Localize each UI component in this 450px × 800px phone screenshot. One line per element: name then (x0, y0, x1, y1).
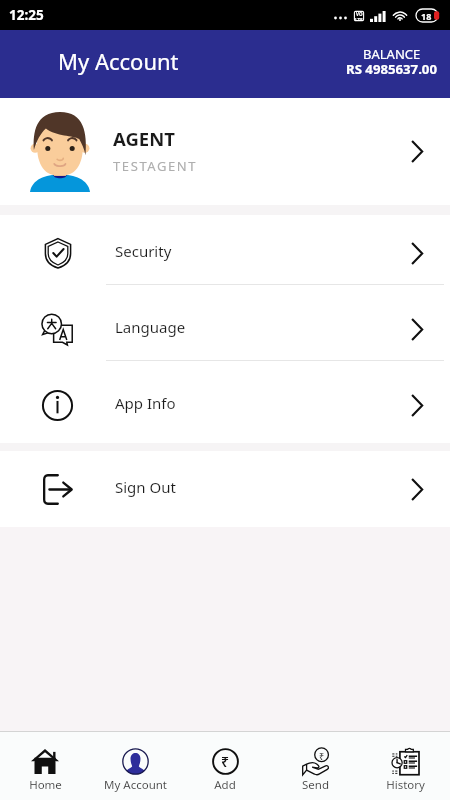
staticText: Send (302, 777, 329, 793)
staticText: Add (214, 777, 236, 793)
button[interactable]: Sign Out (0, 451, 450, 527)
staticText: Sign Out (115, 477, 384, 497)
staticText: ₹ (221, 752, 230, 771)
staticText: BALANCE (363, 45, 421, 63)
staticText: History (386, 777, 425, 793)
staticText: My Account (58, 46, 179, 76)
staticText: Home (29, 777, 62, 793)
button[interactable]: My Account (90, 732, 180, 800)
staticText: Language (115, 317, 384, 337)
staticText: AGENT (113, 126, 175, 151)
button[interactable]: Home (0, 732, 90, 800)
staticText: Security (115, 241, 384, 261)
staticText: LTE (355, 17, 363, 21)
button[interactable]: Language (0, 291, 450, 367)
staticText: TESTAGENT (113, 157, 198, 175)
staticText: App Info (115, 393, 384, 413)
button[interactable]: AGENT (0, 98, 450, 205)
button[interactable]: ₹ (270, 732, 360, 800)
staticText: 12:25 (9, 6, 44, 24)
button[interactable]: ₹ (180, 732, 270, 800)
button[interactable]: History (360, 732, 450, 800)
staticText: ₹ (319, 750, 325, 762)
staticText: My Account (104, 777, 167, 793)
staticText: 18 (421, 10, 432, 22)
staticText: VO (356, 11, 363, 17)
button[interactable]: App Info (0, 367, 450, 443)
staticText: RS 4985637.00 (346, 60, 437, 78)
button[interactable]: Security (0, 215, 450, 291)
